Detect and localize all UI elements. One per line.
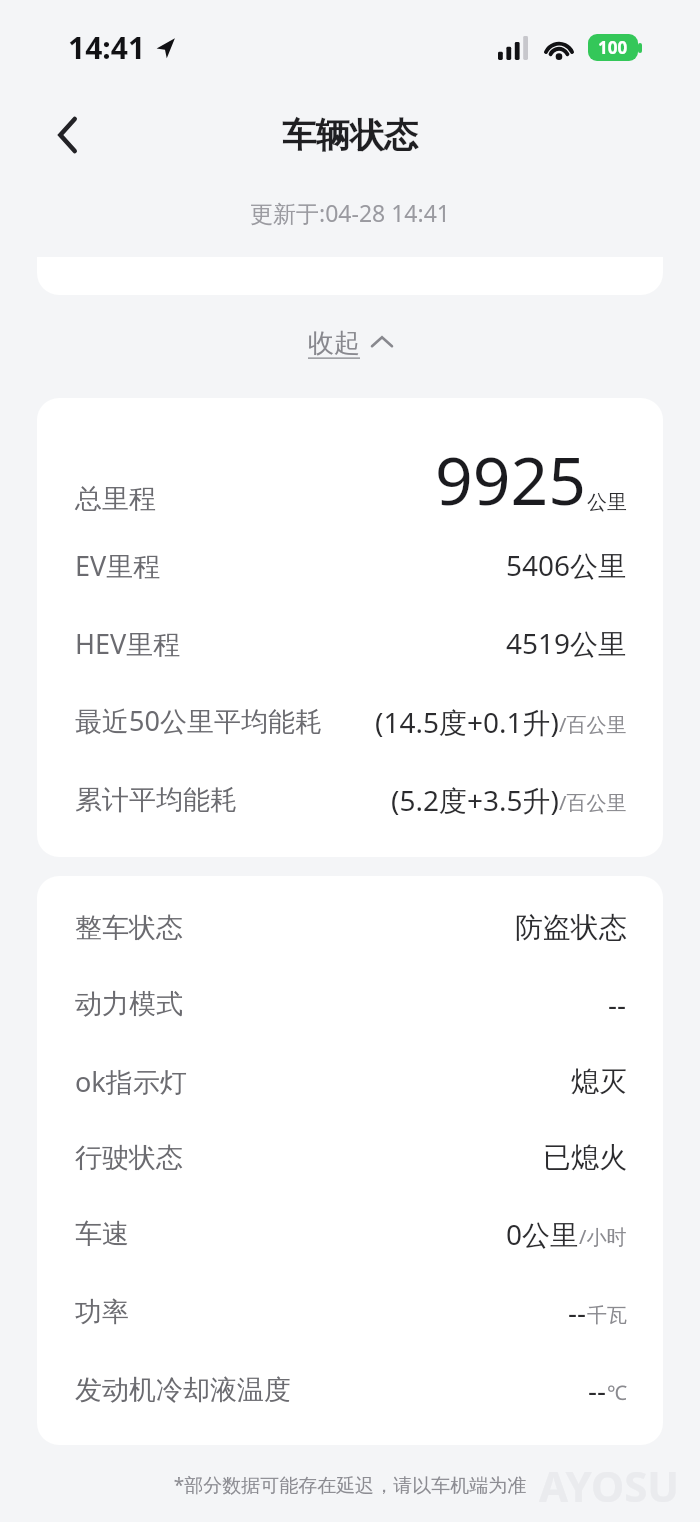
staticText: ok指示灯 <box>75 1063 187 1100</box>
staticText: 防盗状态 <box>515 910 627 945</box>
button[interactable]: HEV里程 <box>75 624 627 662</box>
staticText: 发动机冷却液温度 <box>75 1373 291 1407</box>
staticText: 更新于:04-28 14:41 <box>0 197 700 228</box>
button[interactable]: 收起 <box>298 321 402 366</box>
staticText: -- <box>568 1293 587 1331</box>
staticText: 100 <box>598 36 628 59</box>
button[interactable]: 车速 <box>75 1215 627 1253</box>
staticText: -- <box>588 1371 607 1409</box>
staticText: 公里 <box>587 490 627 515</box>
staticText: -- <box>608 985 627 1023</box>
staticText: AYOSU <box>539 1457 680 1514</box>
staticText: 14:41 <box>68 27 146 68</box>
staticText: 累计平均能耗 <box>75 783 237 817</box>
staticText: (14.5度+0.1升) <box>375 703 559 741</box>
staticText: 总里程 <box>75 482 156 516</box>
button[interactable]: 累计平均能耗 <box>75 781 627 819</box>
staticText: 4519公里 <box>506 624 627 662</box>
staticText: 9925 <box>435 434 587 524</box>
staticText: EV里程 <box>75 547 161 584</box>
button[interactable]: 行驶状态 <box>75 1140 627 1175</box>
button[interactable]: 整车状态 <box>75 910 627 945</box>
staticText: 熄灭 <box>571 1064 627 1099</box>
staticText: HEV里程 <box>75 625 181 662</box>
staticText: 千瓦 <box>587 1303 627 1328</box>
staticText: 已熄火 <box>543 1140 627 1175</box>
staticText: 0公里 <box>506 1215 579 1253</box>
staticText: 行驶状态 <box>75 1141 183 1175</box>
staticText: 5406公里 <box>506 546 627 584</box>
button[interactable]: 最近50公里平均能耗 <box>75 702 627 741</box>
staticText: 整车状态 <box>75 911 183 945</box>
button[interactable]: 功率 <box>75 1293 627 1331</box>
button[interactable]: 动力模式 <box>75 985 627 1023</box>
staticText: (5.2度+3.5升) <box>391 781 559 819</box>
button[interactable]: Back <box>40 107 96 163</box>
staticText: 最近50公里平均能耗 <box>75 702 322 739</box>
staticText: /百公里 <box>559 789 627 816</box>
button[interactable]: 总里程 <box>75 434 627 524</box>
staticText: /百公里 <box>559 711 627 738</box>
staticText: 车速 <box>75 1217 129 1251</box>
staticText: 收起 <box>308 327 360 360</box>
staticText: 功率 <box>75 1295 129 1329</box>
staticText: 动力模式 <box>75 987 183 1021</box>
staticText: *部分数据可能存在延迟，请以车机端为准 <box>0 1472 700 1498</box>
staticText: /小时 <box>579 1223 627 1250</box>
staticText: ℃ <box>607 1379 627 1406</box>
button[interactable]: EV里程 <box>75 546 627 584</box>
staticText: 车辆状态 <box>282 114 418 157</box>
button[interactable]: ok指示灯 <box>75 1063 627 1100</box>
button[interactable]: 发动机冷却液温度 <box>75 1371 627 1409</box>
